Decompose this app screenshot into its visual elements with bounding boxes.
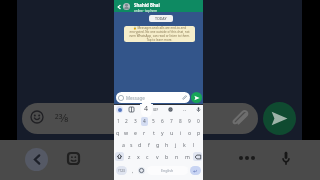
staticText: 5 [152,118,155,125]
button[interactable]: j [171,138,180,150]
button[interactable]: c [143,150,152,163]
staticText: j [175,141,177,148]
button[interactable]: Settings [167,106,174,113]
button[interactable] [22,103,258,134]
button[interactable]: 5 [149,116,158,127]
button[interactable]: o [185,127,194,138]
button[interactable]: Stickers [67,152,80,165]
staticText: 1 [117,118,120,125]
staticText: 4 [143,118,146,125]
staticText: online · tap here [134,9,157,13]
staticText: n [175,153,179,160]
button[interactable]: 7 [167,116,176,127]
button[interactable]: u [167,127,176,138]
button[interactable]: g [153,138,162,150]
staticText: GIF [153,108,159,112]
button[interactable]: Attach [232,110,249,127]
staticText: z [128,153,131,160]
staticText: s [130,141,133,148]
button[interactable]: s [127,138,135,150]
button[interactable]: Emoji [30,110,44,124]
button[interactable]: k [180,138,189,150]
button[interactable]: Stickers [141,101,152,117]
button[interactable]: Clipboard [128,106,135,113]
staticText: ·· [183,106,187,114]
button[interactable]: Shift [115,152,124,161]
staticText: 9 [188,118,191,125]
button[interactable]: Send [263,102,296,135]
staticText: , [132,168,134,174]
button[interactable]: 3 [131,116,140,127]
button[interactable]: i [176,127,185,138]
button[interactable]: n [172,150,182,163]
staticText: ↵ [193,168,198,174]
button[interactable]: English [147,166,188,175]
staticText: g [156,141,160,148]
staticText: a [122,141,125,148]
button[interactable]: m [182,150,192,163]
button[interactable]: Shahid Bhai [134,2,160,13]
button[interactable]: Backspace [193,152,202,161]
button[interactable]: v [152,150,162,163]
button[interactable] [123,3,130,10]
button[interactable]: l [189,138,198,150]
button[interactable]: 4 [140,116,149,127]
button[interactable]: Emoji [138,167,145,174]
staticText: 23⁄8 [55,110,68,125]
button[interactable]: t [149,127,158,138]
button[interactable]: Enter [190,166,201,175]
button[interactable]: 2 [122,116,131,127]
staticText: TODAY [155,16,167,21]
staticText: o [188,129,192,136]
button[interactable]: y [158,127,167,138]
button[interactable]: 6 [158,116,167,127]
staticText: 3 [134,118,137,125]
button[interactable]: Voice search [281,151,291,166]
button[interactable]: Back [25,148,48,171]
button[interactable]: r [140,127,149,138]
button[interactable]: x [134,150,143,163]
staticText: c [146,153,149,160]
staticText: r [143,129,146,136]
button[interactable]: Back [115,3,122,10]
staticText: l [193,141,195,148]
button[interactable]: Symbols [116,166,127,175]
staticText: b [165,153,169,160]
staticText: v [156,153,159,160]
button[interactable]: 8 [176,116,185,127]
button[interactable]: b [162,150,172,163]
button[interactable]: w [122,127,131,138]
button[interactable]: 9 [185,116,194,127]
staticText: p [197,129,201,136]
staticText: English [161,168,174,173]
staticText: f [148,141,150,148]
staticText: Shahid Bhai [134,2,160,8]
button[interactable]: 🔒 Messages and calls are end-to-end encr… [124,26,195,42]
button[interactable]: 1 [114,116,122,127]
button[interactable]: Recents [239,154,255,162]
button[interactable]: TODAY [149,15,173,22]
button[interactable]: Gboard [116,106,123,113]
button[interactable]: p [194,127,203,138]
button[interactable]: a [119,138,127,150]
button[interactable]: e [131,127,140,138]
button[interactable]: h [162,138,171,150]
button[interactable]: Message [116,92,190,103]
staticText: h [165,141,169,148]
staticText: 0 [197,118,200,125]
staticText: k [183,141,186,148]
button[interactable]: q [114,127,122,138]
button[interactable]: z [125,150,134,163]
staticText: u [170,129,174,136]
staticText: 4 [144,104,149,114]
button[interactable]: Voice input [195,106,202,113]
staticText: m [185,153,190,160]
button[interactable]: Send [191,92,202,103]
staticText: y [161,129,164,136]
button[interactable]: 0 [194,116,203,127]
staticText: e [134,129,137,136]
button[interactable]: f [144,138,153,150]
button[interactable]: Comma [130,168,136,174]
button[interactable]: d [135,138,144,150]
staticText: 2 [125,118,128,125]
